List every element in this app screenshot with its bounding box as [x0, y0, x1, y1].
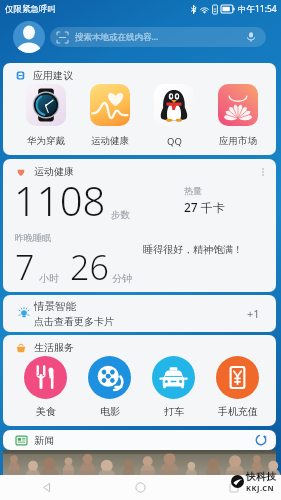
- staticText: 1108: [14, 173, 106, 227]
- staticText: 分钟: [112, 272, 132, 285]
- staticText: 应用建议: [33, 69, 73, 82]
- button[interactable]: Back: [0, 475, 93, 500]
- button[interactable]: Home: [93, 475, 187, 500]
- staticText: 华为穿戴: [27, 135, 65, 147]
- staticText: 打车: [164, 405, 184, 418]
- staticText: 26: [70, 244, 109, 290]
- button[interactable]: 打车: [152, 356, 195, 418]
- staticText: 仅限紧急呼叫: [5, 4, 56, 15]
- staticText: 手机充值: [218, 405, 258, 418]
- staticText: +1: [247, 306, 260, 321]
- staticText: 电影: [100, 405, 120, 418]
- staticText: QQ: [167, 135, 182, 148]
- staticText: 美食: [36, 405, 56, 418]
- staticText: 生活服务: [34, 341, 74, 354]
- staticText: 情景智能: [34, 300, 76, 313]
- button[interactable]: 运动健康: [90, 84, 130, 147]
- staticText: 步数: [111, 209, 130, 221]
- staticText: 新闻: [34, 434, 54, 447]
- button[interactable]: 搜索本地或在线内容...: [50, 27, 266, 47]
- staticText: KKJ.CN: [246, 483, 275, 493]
- staticText: 热量: [184, 185, 202, 196]
- staticText: 7: [15, 244, 35, 290]
- staticText: 小时: [39, 272, 59, 285]
- staticText: 运动健康: [34, 165, 74, 178]
- staticText: 运动健康: [91, 135, 129, 147]
- staticText: 昨晚睡眠: [15, 232, 51, 243]
- button[interactable]: Refresh: [254, 433, 268, 447]
- button[interactable]: 电影: [88, 356, 131, 418]
- staticText: 搜索本地或在线内容...: [75, 31, 159, 43]
- button[interactable]: 手机充值: [216, 356, 259, 418]
- button[interactable]: Recents: [187, 475, 281, 500]
- button[interactable]: 华为穿戴: [26, 84, 66, 147]
- staticText: 应用市场: [219, 135, 257, 147]
- staticText: 中午11:54: [238, 3, 277, 15]
- staticText: 睡得很好，精神饱满！: [143, 243, 243, 256]
- button[interactable]: Profile: [13, 21, 45, 53]
- button[interactable]: More options: [256, 165, 270, 179]
- button[interactable]: QQ: [154, 84, 194, 148]
- button[interactable]: 情景智能: [3, 295, 276, 332]
- staticText: 点击查看更多卡片: [34, 315, 114, 328]
- staticText: 快科技: [246, 470, 276, 483]
- button[interactable]: 美食: [24, 356, 67, 418]
- button[interactable]: 应用市场: [218, 84, 258, 147]
- staticText: 27 千卡: [184, 199, 225, 215]
